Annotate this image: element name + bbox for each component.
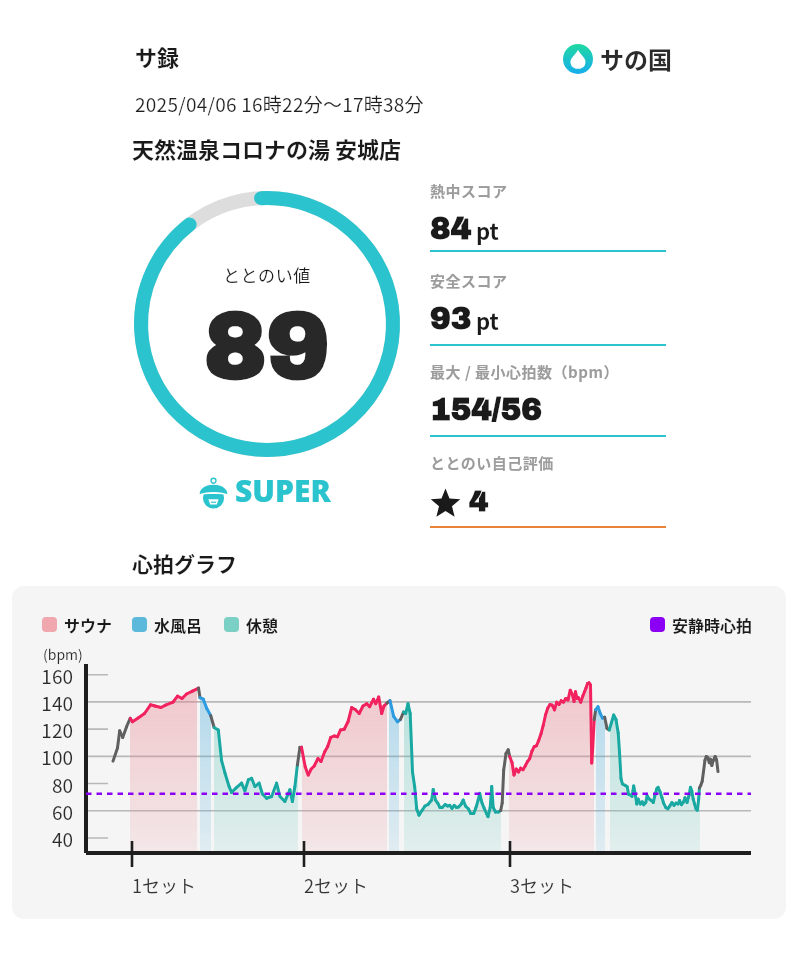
staticText: 心拍グラフ xyxy=(132,548,237,578)
staticText: 1セット xyxy=(132,872,196,898)
staticText: 2025/04/06 16時22分〜17時38分 xyxy=(135,90,424,118)
staticText: サの国 xyxy=(600,41,672,76)
button[interactable]: サの国 xyxy=(563,41,672,76)
staticText: 熱中スコア xyxy=(430,180,508,202)
staticText: 160 xyxy=(28,662,73,690)
staticText: 120 xyxy=(28,716,73,744)
staticText: 最大 / 最小心拍数（bpm） xyxy=(430,361,619,383)
staticText: pt xyxy=(476,304,499,336)
staticText: 安静時心拍 xyxy=(672,613,753,636)
staticText: 154/56 xyxy=(430,393,543,427)
staticText: 84 xyxy=(430,212,472,246)
staticText: 100 xyxy=(28,743,73,771)
staticText: 水風呂 xyxy=(154,613,203,636)
staticText: 2セット xyxy=(304,872,368,898)
staticText: 89 xyxy=(204,295,330,397)
staticText: 60 xyxy=(28,798,73,826)
staticText: 休憩 xyxy=(246,613,279,636)
staticText: ととのい自己評価 xyxy=(430,452,554,474)
staticText: pt xyxy=(476,214,499,246)
staticText: 93 xyxy=(430,302,472,336)
staticText: 安全スコア xyxy=(430,270,508,292)
staticText: 80 xyxy=(28,771,73,799)
staticText: ととのい値 xyxy=(223,262,311,287)
staticText: 3セット xyxy=(510,872,574,898)
button[interactable]: SUPER xyxy=(197,470,331,511)
staticText: 40 xyxy=(28,825,73,853)
staticText: SUPER xyxy=(235,470,331,511)
staticText: 4 xyxy=(469,486,489,518)
staticText: サ録 xyxy=(135,40,180,72)
staticText: (bpm) xyxy=(43,644,83,664)
staticText: サウナ xyxy=(64,613,113,636)
staticText: 140 xyxy=(28,689,73,717)
staticText: 天然温泉コロナの湯 安城店 xyxy=(132,132,401,164)
